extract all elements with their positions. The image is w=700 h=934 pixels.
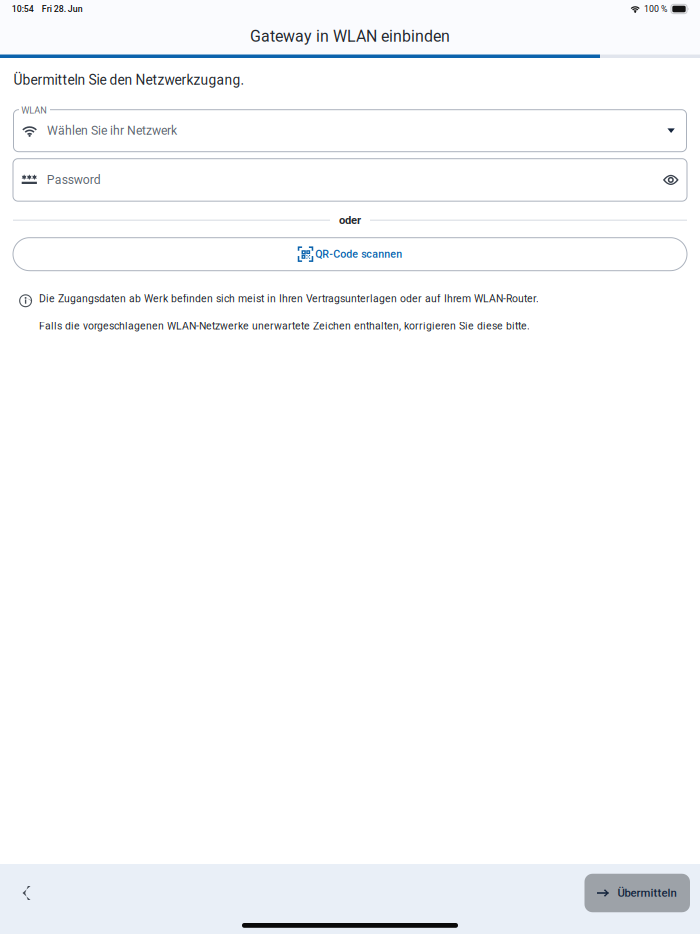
- staticText: Die Zugangsdaten ab Werk befinden sich m…: [39, 293, 539, 305]
- staticText: 10:54: [12, 4, 34, 14]
- staticText: QR-Code scannen: [315, 248, 402, 260]
- staticText: Falls die vorgeschlagenen WLAN-Netzwerke…: [39, 320, 530, 332]
- staticText: Password: [47, 173, 101, 187]
- staticText: Fri 28. Jun: [42, 4, 83, 14]
- staticText: WLAN: [21, 105, 47, 116]
- button[interactable]: QR-Code scannen: [13, 238, 687, 271]
- staticText: 100 %: [644, 4, 667, 14]
- staticText: Übermitteln Sie den Netzwerkzugang.: [13, 72, 244, 88]
- staticText: Wählen Sie ihr Netzwerk: [47, 123, 177, 138]
- staticText: oder: [339, 214, 361, 227]
- button[interactable]: Übermitteln: [584, 874, 690, 912]
- button[interactable]: Back: [3, 871, 49, 915]
- button[interactable]: Password: [13, 159, 687, 201]
- button[interactable]: Wählen Sie ihr Netzwerk: [13, 109, 687, 152]
- staticText: Übermitteln: [617, 886, 676, 900]
- staticText: Gateway in WLAN einbinden: [250, 27, 450, 46]
